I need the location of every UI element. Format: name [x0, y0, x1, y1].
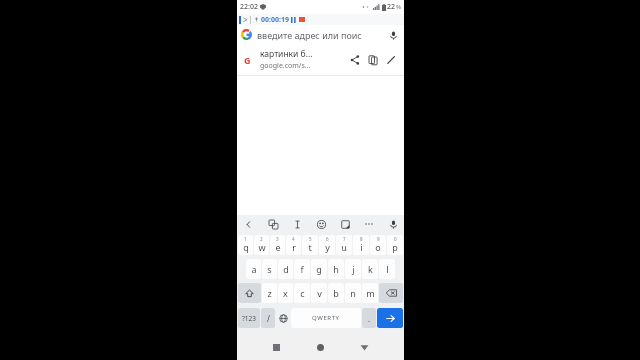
staticText: u	[341, 241, 347, 253]
staticText: w	[258, 241, 266, 253]
staticText: s	[267, 263, 272, 275]
button[interactable]: More options	[362, 217, 376, 231]
button[interactable]: Stickers	[314, 217, 328, 231]
staticText: o	[375, 241, 381, 253]
staticText: введите адрес или поис	[257, 29, 384, 41]
button[interactable]: n	[345, 283, 361, 303]
button[interactable]: 2	[254, 235, 269, 255]
button[interactable]: a	[246, 259, 261, 279]
button[interactable]: f	[294, 259, 310, 279]
button[interactable]: Back	[355, 338, 373, 356]
staticText: 5	[309, 236, 312, 242]
staticText: 6	[326, 236, 329, 242]
staticText: 2	[260, 236, 263, 242]
button[interactable]: 4	[286, 235, 301, 255]
staticText: QWERTY	[312, 314, 340, 322]
button[interactable]: Home	[311, 338, 329, 356]
button[interactable]: 8	[353, 235, 369, 255]
staticText: y	[325, 241, 330, 253]
button[interactable]: ?123	[238, 308, 260, 328]
button[interactable]: Go	[377, 308, 403, 328]
staticText: %	[396, 3, 401, 11]
staticText: e	[275, 241, 281, 253]
button[interactable]: Change language	[276, 308, 290, 328]
button[interactable]: G	[237, 44, 404, 75]
button[interactable]: Back	[241, 217, 255, 231]
button[interactable]: QWERTY	[291, 308, 361, 328]
button[interactable]: Clipboard	[338, 217, 352, 231]
button[interactable]: d	[278, 259, 293, 279]
other: Google	[241, 29, 252, 40]
button[interactable]: Shift	[238, 283, 261, 303]
button[interactable]: 9	[370, 235, 386, 255]
button[interactable]: s	[262, 259, 277, 279]
button[interactable]: l	[379, 259, 395, 279]
button[interactable]: h	[328, 259, 344, 279]
staticText: /	[267, 313, 270, 324]
staticText: h	[333, 263, 339, 275]
staticText: картинки б…	[260, 48, 313, 60]
staticText: m	[366, 287, 375, 299]
staticText: d	[283, 263, 289, 275]
button[interactable]: Recent apps	[267, 338, 285, 356]
staticText: 22	[387, 2, 396, 12]
staticText: p	[392, 241, 398, 253]
staticText: G	[244, 54, 251, 65]
staticText: >	[243, 14, 248, 25]
staticText: 00:00:19	[261, 15, 289, 25]
staticText: 8	[360, 236, 363, 242]
button[interactable]: 7	[336, 235, 352, 255]
button[interactable]: j	[345, 259, 361, 279]
button[interactable]: 0	[387, 235, 403, 255]
staticText: 22:02	[240, 2, 258, 12]
staticText: j	[352, 263, 355, 275]
staticText: g	[316, 263, 322, 275]
staticText: 9	[377, 236, 380, 242]
staticText: .	[368, 313, 371, 324]
staticText: 3	[276, 236, 279, 242]
staticText: 0	[394, 236, 397, 242]
button[interactable]: Translate	[266, 217, 280, 231]
staticText: n	[350, 287, 356, 299]
staticText: google.com/s…	[260, 61, 311, 71]
staticText: k	[368, 263, 373, 275]
button[interactable]: Backspace	[379, 283, 403, 303]
button[interactable]: Text editing	[290, 217, 304, 231]
button[interactable]: c	[294, 283, 310, 303]
staticText: x	[283, 287, 288, 299]
button[interactable]: z	[262, 283, 277, 303]
button[interactable]: 3	[270, 235, 285, 255]
staticText: 4	[292, 236, 295, 242]
staticText: r	[292, 241, 296, 253]
button[interactable]: 1	[238, 235, 253, 255]
button[interactable]: Voice input	[386, 217, 400, 231]
button[interactable]: 6	[319, 235, 335, 255]
button[interactable]: /	[261, 308, 275, 328]
button[interactable]: .	[362, 308, 376, 328]
staticText: z	[267, 287, 272, 299]
staticText: q	[243, 241, 249, 253]
button[interactable]: Copy	[364, 51, 382, 69]
staticText: b	[333, 287, 339, 299]
staticText: t	[308, 241, 312, 253]
button[interactable]: b	[328, 283, 344, 303]
button[interactable]: 5	[302, 235, 318, 255]
button[interactable]: k	[362, 259, 378, 279]
staticText: 7	[343, 236, 346, 242]
staticText: f	[300, 263, 304, 275]
staticText: i	[360, 241, 363, 253]
button[interactable]: g	[311, 259, 327, 279]
staticText: ?123	[242, 314, 256, 323]
staticText: l	[386, 263, 389, 275]
button[interactable]: Voice search	[386, 28, 400, 42]
staticText: v	[317, 287, 322, 299]
button[interactable]: Edit	[382, 51, 400, 69]
staticText: a	[251, 263, 257, 275]
staticText: c	[300, 287, 305, 299]
button[interactable]: m	[362, 283, 378, 303]
button[interactable]: x	[278, 283, 293, 303]
button[interactable]: Share	[346, 51, 364, 69]
button[interactable]: v	[311, 283, 327, 303]
staticText: 1	[244, 236, 247, 242]
